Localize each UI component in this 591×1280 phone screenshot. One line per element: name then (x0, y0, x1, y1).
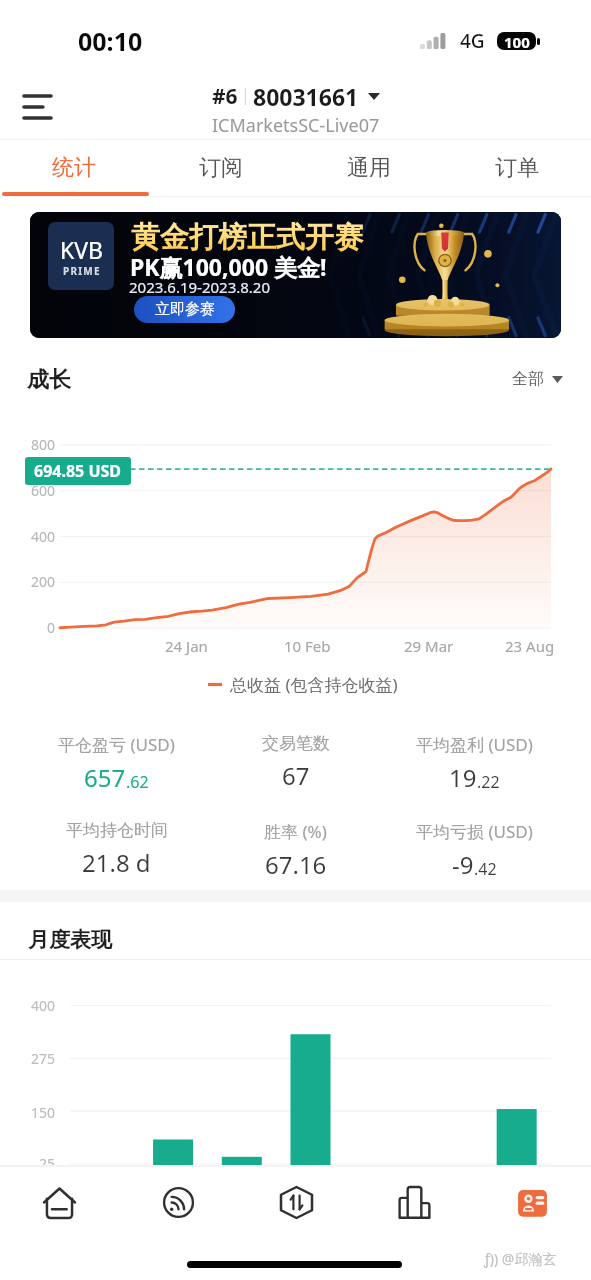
staticText: 月度表现 (28, 927, 112, 953)
button[interactable]: Trade (237, 1165, 355, 1236)
staticText: 平仓盈亏 (USD) (58, 733, 175, 756)
staticText: .62 (126, 771, 149, 793)
staticText: -9 (452, 848, 474, 881)
staticText: 通用 (347, 154, 391, 182)
button[interactable]: #6 (0, 81, 591, 138)
staticText: 平均持仓时间 (66, 820, 168, 841)
staticText: 00:10 (78, 24, 143, 58)
button[interactable]: 立即参赛 (134, 296, 235, 323)
button[interactable]: Signals (119, 1165, 237, 1236)
staticText: 800 (31, 435, 56, 454)
staticText: 19 (449, 761, 477, 794)
staticText: 150 (31, 1103, 56, 1122)
staticText: 24 Jan (165, 636, 208, 656)
staticText: 67 (282, 759, 310, 792)
staticText: 成长 (27, 366, 71, 394)
button[interactable]: 全部 (512, 369, 563, 389)
staticText: 平均亏损 (USD) (416, 820, 533, 843)
staticText: 67.16 (265, 848, 327, 881)
staticText: 21.8 d (82, 846, 151, 879)
staticText: 657 (84, 761, 126, 794)
staticText: 统计 (52, 154, 96, 182)
staticText: ƒ)) @邱瀚玄 (484, 1249, 557, 1268)
staticText: 400 (31, 996, 56, 1015)
staticText: ICMarketsSC-Live07 (212, 113, 380, 138)
staticText: 200 (31, 572, 56, 591)
staticText: 25 (39, 1154, 56, 1173)
staticText: 29 Mar (404, 636, 454, 656)
staticText: 0 (47, 618, 56, 637)
staticText: 10 Feb (284, 636, 331, 656)
staticText: 胜率 (%) (264, 820, 327, 843)
button[interactable]: Home (0, 1165, 119, 1236)
staticText: 平均盈利 (USD) (416, 733, 533, 756)
staticText: PK赢100,000 美金! (130, 251, 327, 282)
staticText: 订单 (495, 154, 539, 182)
button[interactable]: Profile (473, 1165, 591, 1236)
staticText: 4G (460, 28, 485, 54)
staticText: 黄金打榜正式开赛 (131, 219, 363, 256)
staticText: 交易笔数 (262, 733, 330, 754)
button[interactable]: 统计 (0, 140, 147, 197)
staticText: 2023.6.19-2023.8.20 (129, 277, 271, 297)
staticText: 23 Aug (505, 636, 555, 656)
staticText: 694.85 USD (34, 460, 122, 482)
staticText: 立即参赛 (155, 300, 215, 319)
staticText: 400 (31, 527, 56, 546)
button[interactable]: Statistics (355, 1165, 473, 1236)
staticText: 80031661 (253, 81, 359, 112)
staticText: KVB (60, 234, 103, 265)
staticText: 100 (504, 32, 530, 50)
button[interactable]: 订单 (443, 140, 591, 197)
button[interactable]: 通用 (295, 140, 443, 197)
staticText: #6 (212, 82, 238, 111)
staticText: .42 (474, 858, 497, 880)
staticText: 总收益 (包含持仓收益) (230, 673, 398, 696)
staticText: 275 (31, 1049, 56, 1068)
staticText: 600 (31, 481, 56, 500)
button[interactable]: Menu (14, 84, 60, 130)
staticText: PRIME (63, 264, 101, 278)
button[interactable]: 订阅 (147, 140, 295, 197)
staticText: 订阅 (199, 154, 243, 182)
staticText: .22 (477, 771, 500, 793)
button[interactable]: Promotion banner (30, 212, 561, 338)
staticText: 全部 (512, 369, 544, 389)
